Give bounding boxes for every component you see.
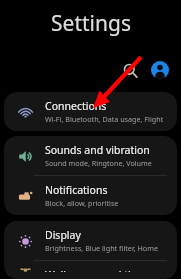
staticText: Wallpapers and themes xyxy=(45,268,162,272)
button[interactable]: Connections xyxy=(4,92,177,131)
staticText: Settings xyxy=(51,9,131,38)
staticText: Sounds and vibration xyxy=(45,143,150,157)
staticText: Connections xyxy=(45,99,107,113)
button[interactable]: Search xyxy=(118,58,142,82)
staticText: Display xyxy=(45,228,81,242)
staticText: Block, allow, prioritise xyxy=(45,198,119,208)
button[interactable]: Account xyxy=(149,59,171,81)
staticText: Sound mode, Ringtone, Volume xyxy=(45,158,152,168)
button[interactable]: Display xyxy=(4,221,177,260)
staticText: Notifications xyxy=(45,183,108,197)
button[interactable]: Wallpapers and themes xyxy=(4,261,177,279)
button[interactable]: Sounds and vibration xyxy=(4,136,177,175)
staticText: Brightness, Blue light filter, Home scre… xyxy=(45,243,169,253)
button[interactable]: Notifications xyxy=(4,176,177,215)
staticText: Wi-Fi, Bluetooth, Data usage, Flight mod… xyxy=(45,114,169,124)
